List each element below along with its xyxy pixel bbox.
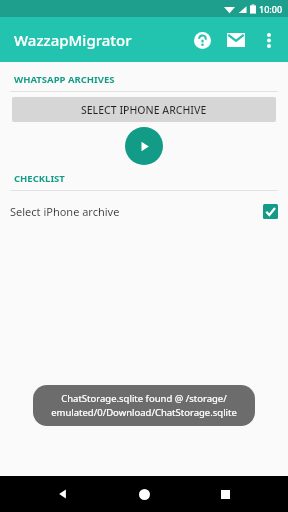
staticText: ChatStorage.sqlite found @ /storage/ emu… <box>51 392 237 419</box>
button[interactable]: Start migration <box>125 127 163 165</box>
staticText: CHECKLIST <box>14 172 65 185</box>
staticText: SELECT IPHONE ARCHIVE <box>81 103 207 117</box>
staticText: Select iPhone archive <box>10 204 120 219</box>
staticText: WHATSAPP ARCHIVES <box>14 73 115 86</box>
button[interactable]: SELECT IPHONE ARCHIVE <box>12 97 276 122</box>
button[interactable]: Help <box>185 23 219 57</box>
button[interactable]: Back <box>45 476 81 512</box>
button[interactable]: Select iPhone archive <box>0 199 288 223</box>
staticText: 10:00 <box>259 3 283 15</box>
button[interactable]: Recents <box>207 476 243 512</box>
staticText: WazzapMigrator <box>14 30 132 50</box>
button[interactable]: Email <box>219 23 253 57</box>
button[interactable]: Home <box>126 476 162 512</box>
button[interactable]: More options <box>253 24 285 56</box>
